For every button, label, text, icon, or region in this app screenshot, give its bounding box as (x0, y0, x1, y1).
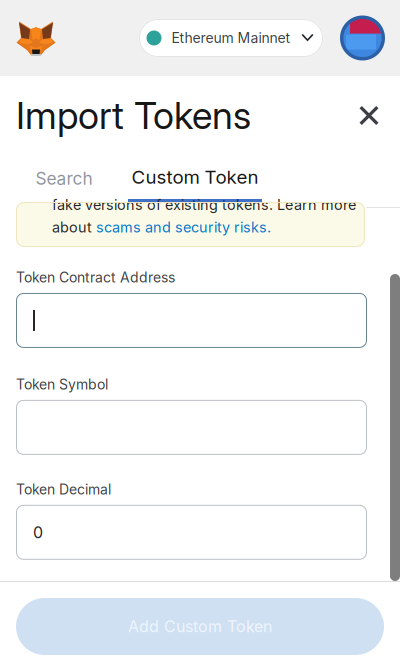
staticText: Token Decimal (16, 481, 111, 498)
staticText: fake versions of existing tokens. Learn … (52, 196, 356, 214)
button[interactable]: Close (346, 92, 392, 138)
staticText: Import Tokens (16, 93, 251, 138)
button[interactable]: MetaMask (0, 0, 56, 76)
staticText: about (52, 219, 96, 236)
staticText: scams and security risks. (96, 219, 271, 236)
button[interactable]: Ethereum Mainnet (139, 19, 323, 57)
staticText: Token Contract Address (16, 269, 175, 286)
staticText: Custom Token (131, 166, 258, 188)
staticText: Search (35, 168, 92, 189)
button[interactable]: Search (0, 155, 128, 202)
staticText: Token Symbol (16, 376, 108, 393)
staticText: Add Custom Token (128, 617, 272, 636)
button[interactable]: Account (340, 0, 400, 76)
staticText: 0 (33, 523, 43, 542)
staticText: Ethereum Mainnet (171, 29, 290, 46)
button[interactable]: Add Custom Token (0, 582, 384, 655)
button[interactable]: Custom Token (128, 155, 262, 202)
